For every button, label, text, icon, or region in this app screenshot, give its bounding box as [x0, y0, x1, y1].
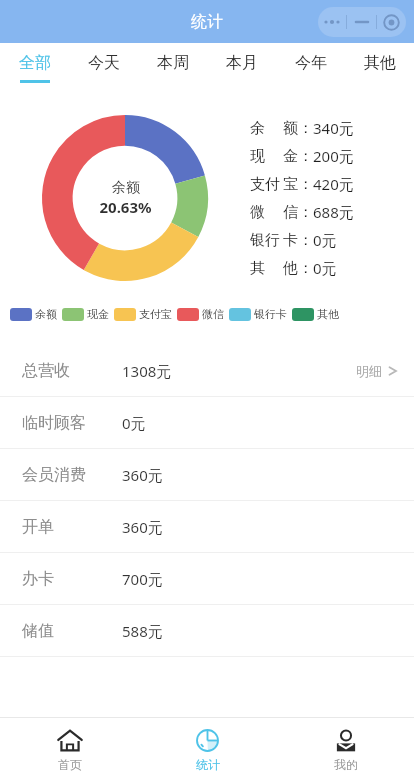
- staticText: 宝: [283, 175, 298, 194]
- staticText: 360元: [122, 517, 163, 537]
- staticText: 信: [283, 203, 298, 222]
- staticText: 420元: [313, 174, 354, 194]
- button[interactable]: 本周: [138, 43, 207, 93]
- staticText: 额: [283, 119, 298, 138]
- staticText: 明细: [356, 363, 382, 379]
- staticText: 余: [250, 119, 265, 138]
- staticText: 688元: [313, 202, 354, 222]
- staticText: 20.63%: [99, 197, 152, 217]
- staticText: 1308元: [122, 361, 172, 381]
- staticText: ：: [298, 119, 313, 138]
- staticText: 余额: [35, 307, 57, 321]
- staticText: 今天: [88, 53, 120, 73]
- staticText: 340元: [313, 118, 354, 138]
- staticText: 0元: [122, 413, 146, 433]
- staticText: ：: [298, 147, 313, 166]
- staticText: 支付宝: [139, 307, 172, 321]
- button[interactable]: 首页: [0, 718, 138, 780]
- staticText: ：: [298, 259, 313, 278]
- staticText: 金: [283, 147, 298, 166]
- button[interactable]: 今天: [69, 43, 138, 93]
- button[interactable]: Menu: [318, 7, 406, 37]
- button[interactable]: 办卡: [0, 553, 414, 605]
- staticText: 360元: [122, 465, 163, 485]
- button[interactable]: 开单: [0, 501, 414, 553]
- staticText: 本月: [226, 53, 258, 73]
- staticText: 微信: [202, 307, 224, 321]
- staticText: 余额: [112, 179, 140, 197]
- button[interactable]: 临时顾客: [0, 397, 414, 449]
- button[interactable]: 会员消费: [0, 449, 414, 501]
- staticText: ：: [298, 231, 313, 250]
- staticText: ：: [298, 175, 313, 194]
- staticText: 办卡: [22, 569, 122, 589]
- button[interactable]: 全部: [0, 43, 69, 93]
- staticText: 200元: [313, 146, 354, 166]
- staticText: 微: [250, 203, 265, 222]
- staticText: 700元: [122, 569, 163, 589]
- staticText: 0元: [313, 230, 337, 250]
- staticText: 首页: [58, 757, 82, 772]
- staticText: 其: [250, 259, 265, 278]
- button[interactable]: 储值: [0, 605, 414, 657]
- staticText: 0元: [313, 258, 337, 278]
- staticText: 他: [283, 259, 298, 278]
- staticText: 本周: [157, 53, 189, 73]
- staticText: 临时顾客: [22, 413, 122, 433]
- button[interactable]: 本月: [207, 43, 276, 93]
- staticText: 会员消费: [22, 465, 122, 485]
- staticText: 其他: [317, 307, 339, 321]
- staticText: 储值: [22, 621, 122, 641]
- button[interactable]: 总营收: [0, 345, 414, 397]
- staticText: 我的: [334, 757, 358, 772]
- staticText: ：: [298, 203, 313, 222]
- staticText: 统计: [196, 757, 220, 772]
- button[interactable]: 我的: [276, 718, 414, 780]
- staticText: 全部: [19, 53, 51, 73]
- staticText: 开单: [22, 517, 122, 537]
- staticText: 银行: [250, 231, 280, 250]
- staticText: 现金: [87, 307, 109, 321]
- staticText: 今年: [295, 53, 327, 73]
- staticText: 统计: [191, 12, 223, 32]
- staticText: 现: [250, 147, 265, 166]
- staticText: 总营收: [22, 361, 122, 381]
- button[interactable]: 今年: [276, 43, 345, 93]
- staticText: 银行卡: [254, 307, 287, 321]
- staticText: 588元: [122, 621, 163, 641]
- staticText: 其他: [364, 53, 396, 73]
- staticText: 卡: [283, 231, 298, 250]
- staticText: 支付: [250, 175, 280, 194]
- button[interactable]: 其他: [345, 43, 414, 93]
- button[interactable]: 统计: [138, 718, 276, 780]
